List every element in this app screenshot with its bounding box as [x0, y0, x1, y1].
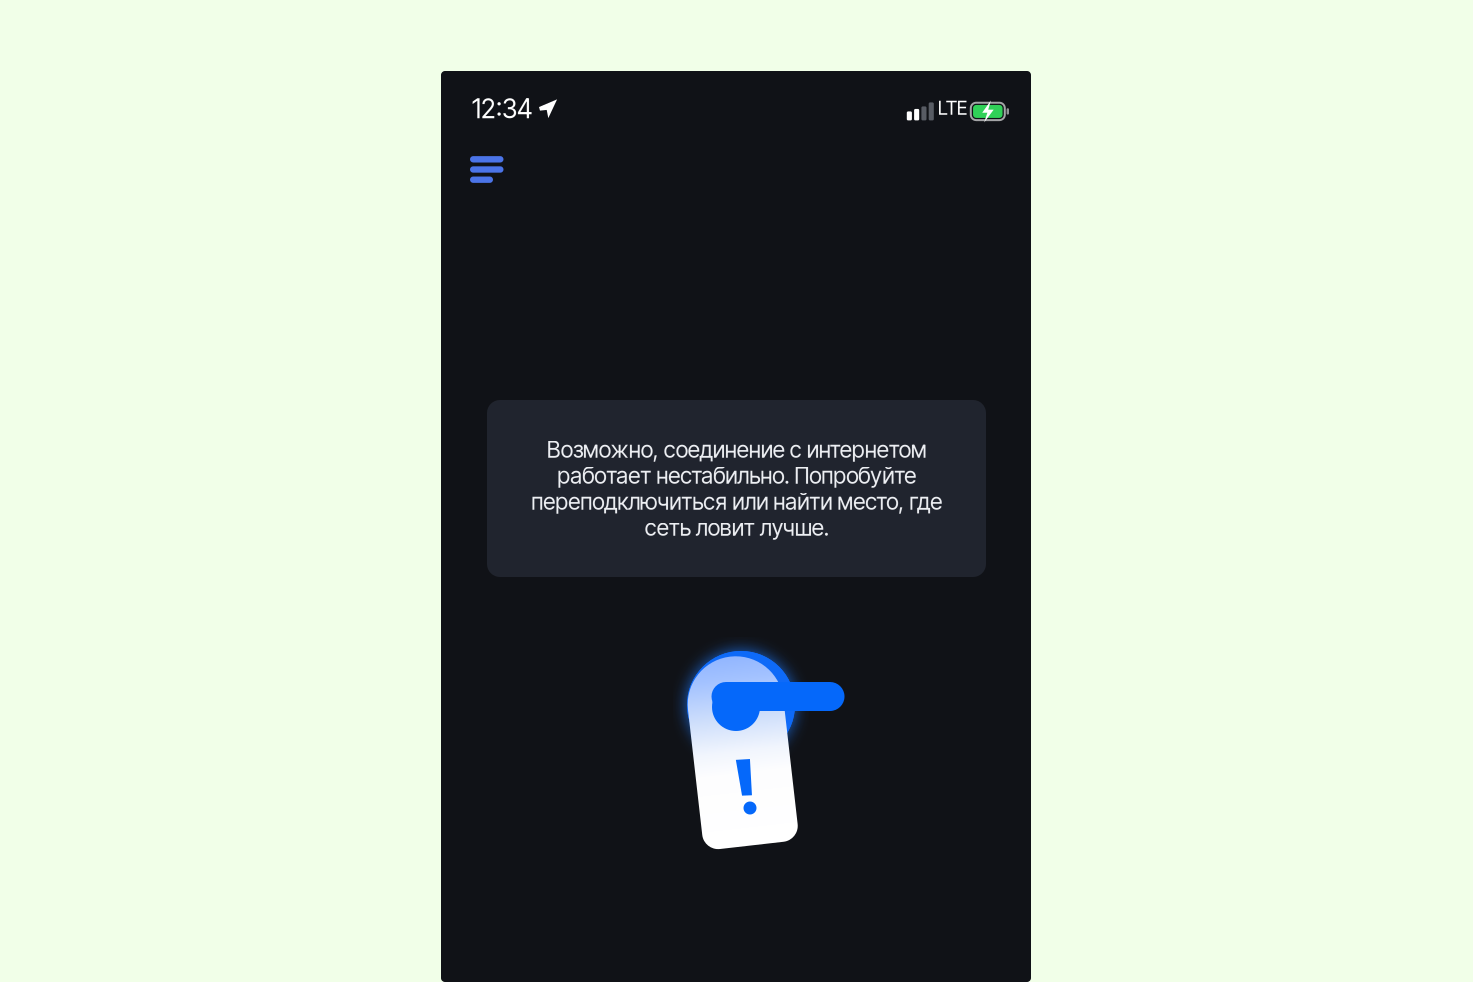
button[interactable]: Menu: [462, 147, 511, 192]
staticText: 12:34: [472, 93, 532, 124]
staticText: Возможно, соединение с интернетом работа…: [531, 436, 942, 541]
staticText: LTE: [938, 96, 968, 119]
